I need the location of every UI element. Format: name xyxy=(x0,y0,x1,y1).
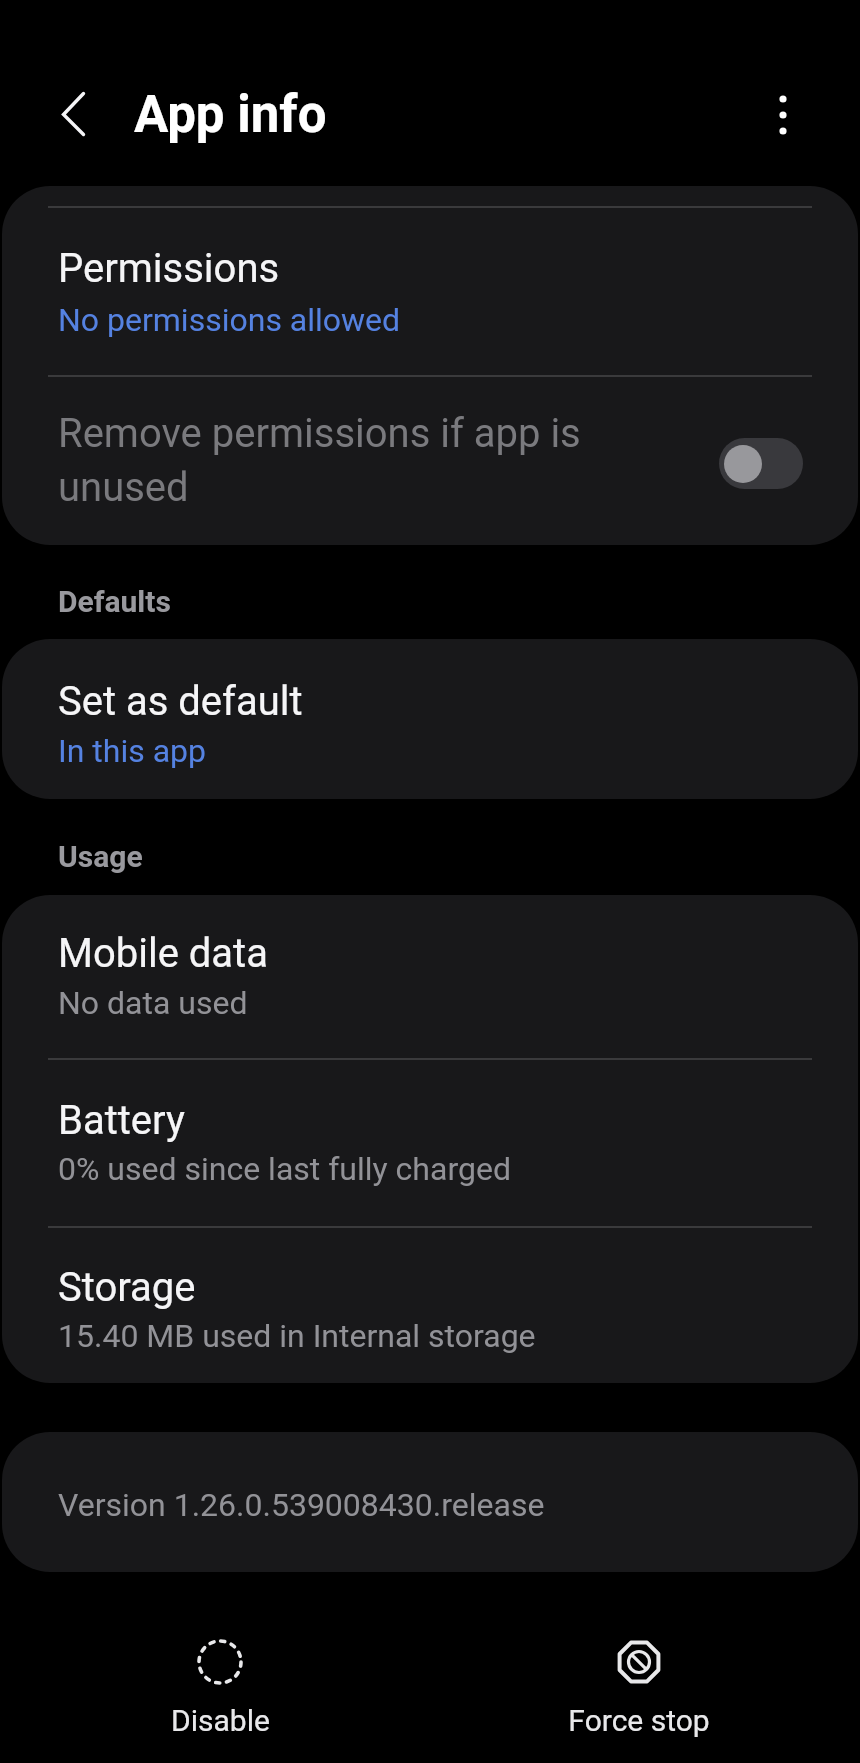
staticText: No permissions allowed xyxy=(58,301,401,339)
button[interactable]: Storage xyxy=(2,1228,858,1383)
staticText: No data used xyxy=(58,984,248,1022)
staticText: Mobile data xyxy=(58,930,268,977)
button[interactable] xyxy=(47,87,103,143)
staticText: 0% used since last fully charged xyxy=(58,1150,511,1188)
staticText: Remove permissions if app is unused xyxy=(58,410,581,511)
button[interactable] xyxy=(755,87,811,143)
staticText: Disable xyxy=(171,1703,270,1738)
staticText: Permissions xyxy=(58,245,280,292)
staticText: Force stop xyxy=(568,1703,710,1738)
staticText: App info xyxy=(134,85,327,145)
button[interactable]: Permissions xyxy=(2,208,858,375)
button[interactable]: Battery xyxy=(2,1060,858,1226)
staticText: Defaults xyxy=(58,584,171,619)
staticText: Set as default xyxy=(58,678,303,725)
staticText: Battery xyxy=(58,1097,185,1144)
staticText: In this app xyxy=(58,732,206,770)
button[interactable] xyxy=(520,1620,760,1750)
button[interactable]: Remove permissions if app is unused xyxy=(2,377,858,545)
button[interactable]: Set as default xyxy=(2,639,858,799)
button[interactable]: Mobile data xyxy=(2,895,858,1058)
staticText: Version 1.26.0.539008430.release xyxy=(58,1486,545,1524)
staticText: Storage xyxy=(58,1264,196,1311)
staticText: Usage xyxy=(58,839,143,874)
staticText: 15.40 MB used in Internal storage xyxy=(58,1317,536,1355)
button[interactable] xyxy=(100,1620,340,1750)
